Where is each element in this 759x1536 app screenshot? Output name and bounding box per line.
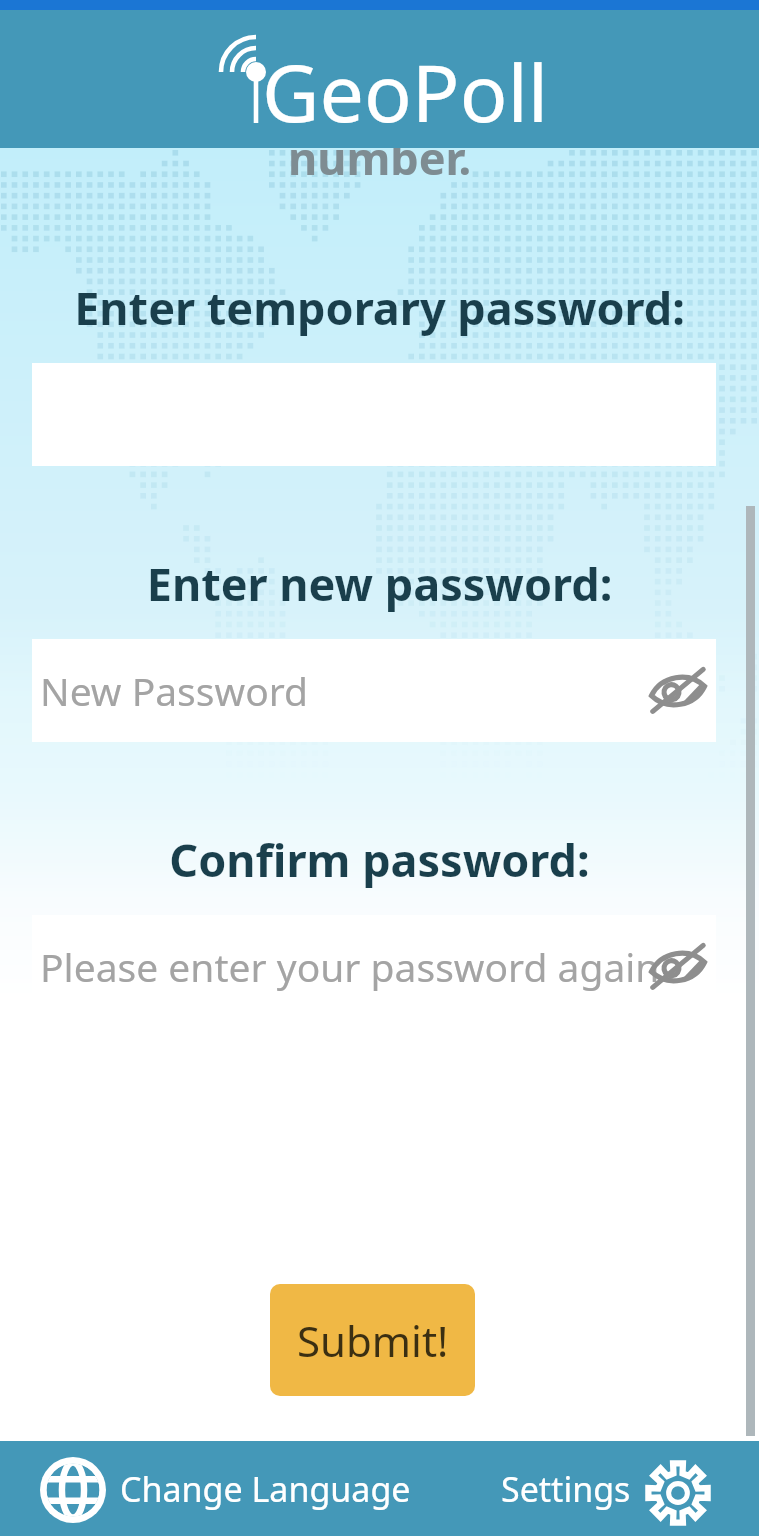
staticText: Confirm password: bbox=[0, 829, 759, 890]
button[interactable]: Toggle password visibility bbox=[648, 661, 708, 721]
staticText: number. bbox=[0, 127, 759, 188]
button[interactable]: Please enter your password again bbox=[32, 915, 716, 1018]
staticText: Enter new password: bbox=[0, 553, 759, 614]
staticText: GeoPoll bbox=[262, 38, 549, 146]
button[interactable]: Change Language bbox=[0, 1441, 501, 1536]
staticText: New Password bbox=[40, 664, 309, 717]
staticText: Please enter your password again bbox=[40, 940, 660, 993]
staticText: Change Language bbox=[120, 1466, 411, 1512]
button[interactable]: Submit! bbox=[270, 1284, 475, 1396]
staticText: Enter temporary password: bbox=[0, 277, 759, 338]
button[interactable]: New Password bbox=[32, 639, 716, 742]
button[interactable]: Toggle password visibility bbox=[648, 937, 708, 997]
staticText: Settings bbox=[501, 1466, 631, 1512]
button[interactable]: Settings bbox=[501, 1441, 759, 1536]
staticText: Submit! bbox=[297, 1312, 449, 1369]
